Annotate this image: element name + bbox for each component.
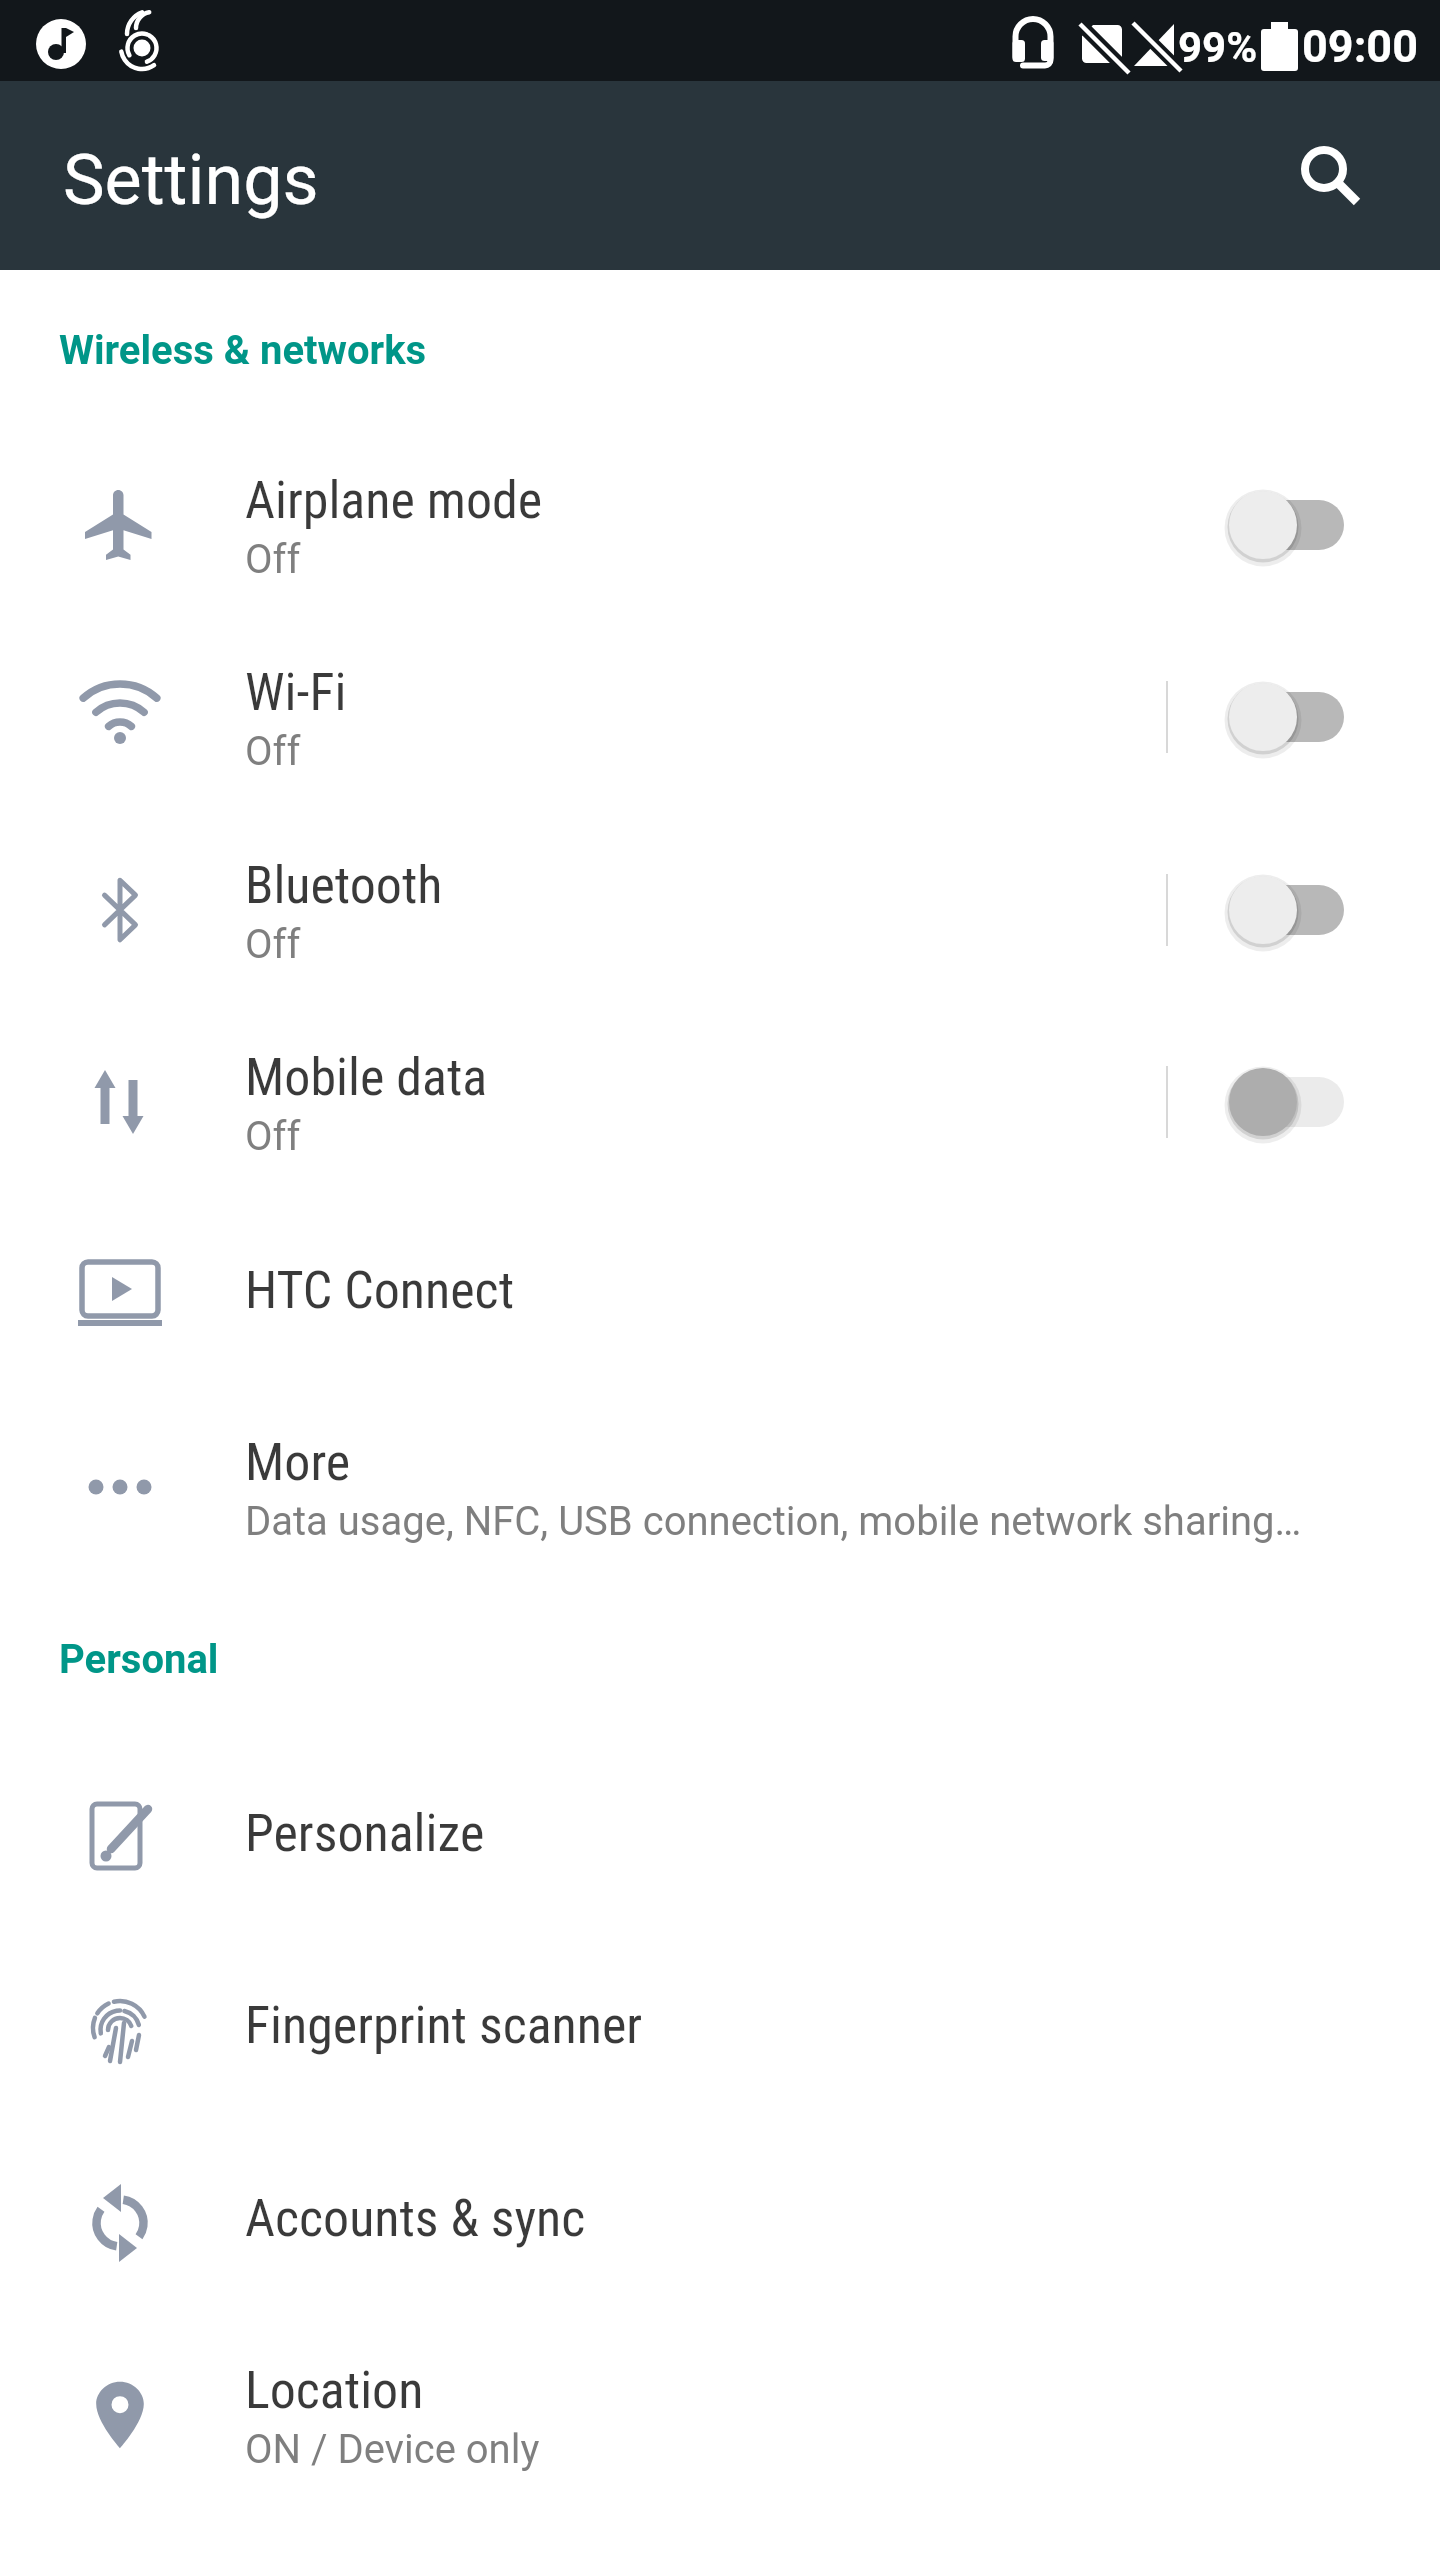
button[interactable]	[1210, 845, 1360, 975]
button[interactable]	[1210, 460, 1360, 590]
staticText: Data usage, NFC, USB connection, mobile …	[245, 1498, 1302, 1545]
staticText: ON / Device only	[245, 2426, 540, 2473]
button[interactable]: Bluetooth	[0, 814, 1440, 1006]
staticText: Off	[245, 728, 301, 775]
button[interactable]: Airplane mode	[0, 429, 1440, 621]
staticText: Airplane mode	[245, 470, 543, 531]
button[interactable]: More	[0, 1391, 1440, 1583]
button[interactable]: Fingerprint scanner	[0, 1934, 1440, 2126]
staticText: Bluetooth	[245, 855, 443, 916]
staticText: Location	[245, 2360, 424, 2421]
staticText: Wireless & networks	[59, 327, 427, 374]
staticText: Accounts & sync	[245, 2188, 586, 2249]
button[interactable]	[1210, 1037, 1360, 1167]
staticText: Fingerprint scanner	[245, 1995, 643, 2056]
button[interactable]: Location	[0, 2319, 1440, 2511]
staticText: Settings	[63, 139, 319, 221]
staticText: Off	[245, 921, 301, 968]
staticText: Mobile data	[245, 1047, 488, 1108]
staticText: Wi-Fi	[245, 662, 347, 723]
button[interactable]: Accounts & sync	[0, 2127, 1440, 2319]
staticText: HTC Connect	[245, 1260, 515, 1321]
button[interactable]	[1210, 652, 1360, 782]
button[interactable]: HTC Connect	[0, 1199, 1440, 1391]
staticText: 09:00	[1302, 20, 1418, 73]
button[interactable]: Mobile data	[0, 1006, 1440, 1198]
staticText: More	[245, 1432, 351, 1493]
staticText: Off	[245, 536, 301, 583]
staticText: Off	[245, 1113, 301, 1160]
staticText: Personalize	[245, 1803, 485, 1864]
staticText: Personal	[59, 1636, 219, 1683]
staticText: 99%	[1178, 23, 1258, 72]
button[interactable]: Wi-Fi	[0, 621, 1440, 813]
button[interactable]	[1272, 117, 1376, 221]
button[interactable]: Personalize	[0, 1742, 1440, 1934]
